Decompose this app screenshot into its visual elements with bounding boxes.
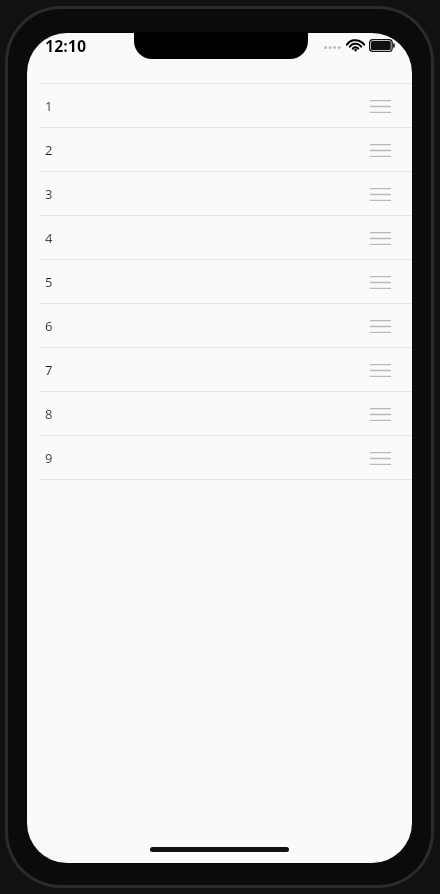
button[interactable]: Reorder 9 — [365, 443, 395, 473]
button[interactable]: Reorder 5 — [365, 267, 395, 297]
staticText: 5 — [45, 273, 53, 291]
button[interactable]: 8 — [27, 392, 412, 435]
button[interactable]: 2 — [27, 128, 412, 171]
button[interactable]: Reorder 4 — [365, 223, 395, 253]
button[interactable]: 1 — [27, 84, 412, 127]
button[interactable]: Reorder 8 — [365, 399, 395, 429]
button[interactable]: Reorder 6 — [365, 311, 395, 341]
staticText: 8 — [45, 405, 53, 423]
staticText: 9 — [45, 449, 53, 467]
button[interactable]: Reorder 3 — [365, 179, 395, 209]
button[interactable]: Reorder 2 — [365, 135, 395, 165]
staticText: 1 — [45, 97, 53, 115]
button[interactable]: 7 — [27, 348, 412, 391]
button[interactable]: 3 — [27, 172, 412, 215]
button[interactable]: 9 — [27, 436, 412, 479]
staticText: 3 — [45, 185, 53, 203]
staticText: 12:10 — [45, 35, 87, 57]
button[interactable]: 4 — [27, 216, 412, 259]
staticText: 7 — [45, 361, 53, 379]
staticText: 4 — [45, 229, 53, 247]
staticText: 2 — [45, 141, 53, 159]
staticText: 6 — [45, 317, 53, 335]
button[interactable]: 6 — [27, 304, 412, 347]
button[interactable]: Reorder 1 — [365, 91, 395, 121]
button[interactable]: Reorder 7 — [365, 355, 395, 385]
button[interactable]: 5 — [27, 260, 412, 303]
